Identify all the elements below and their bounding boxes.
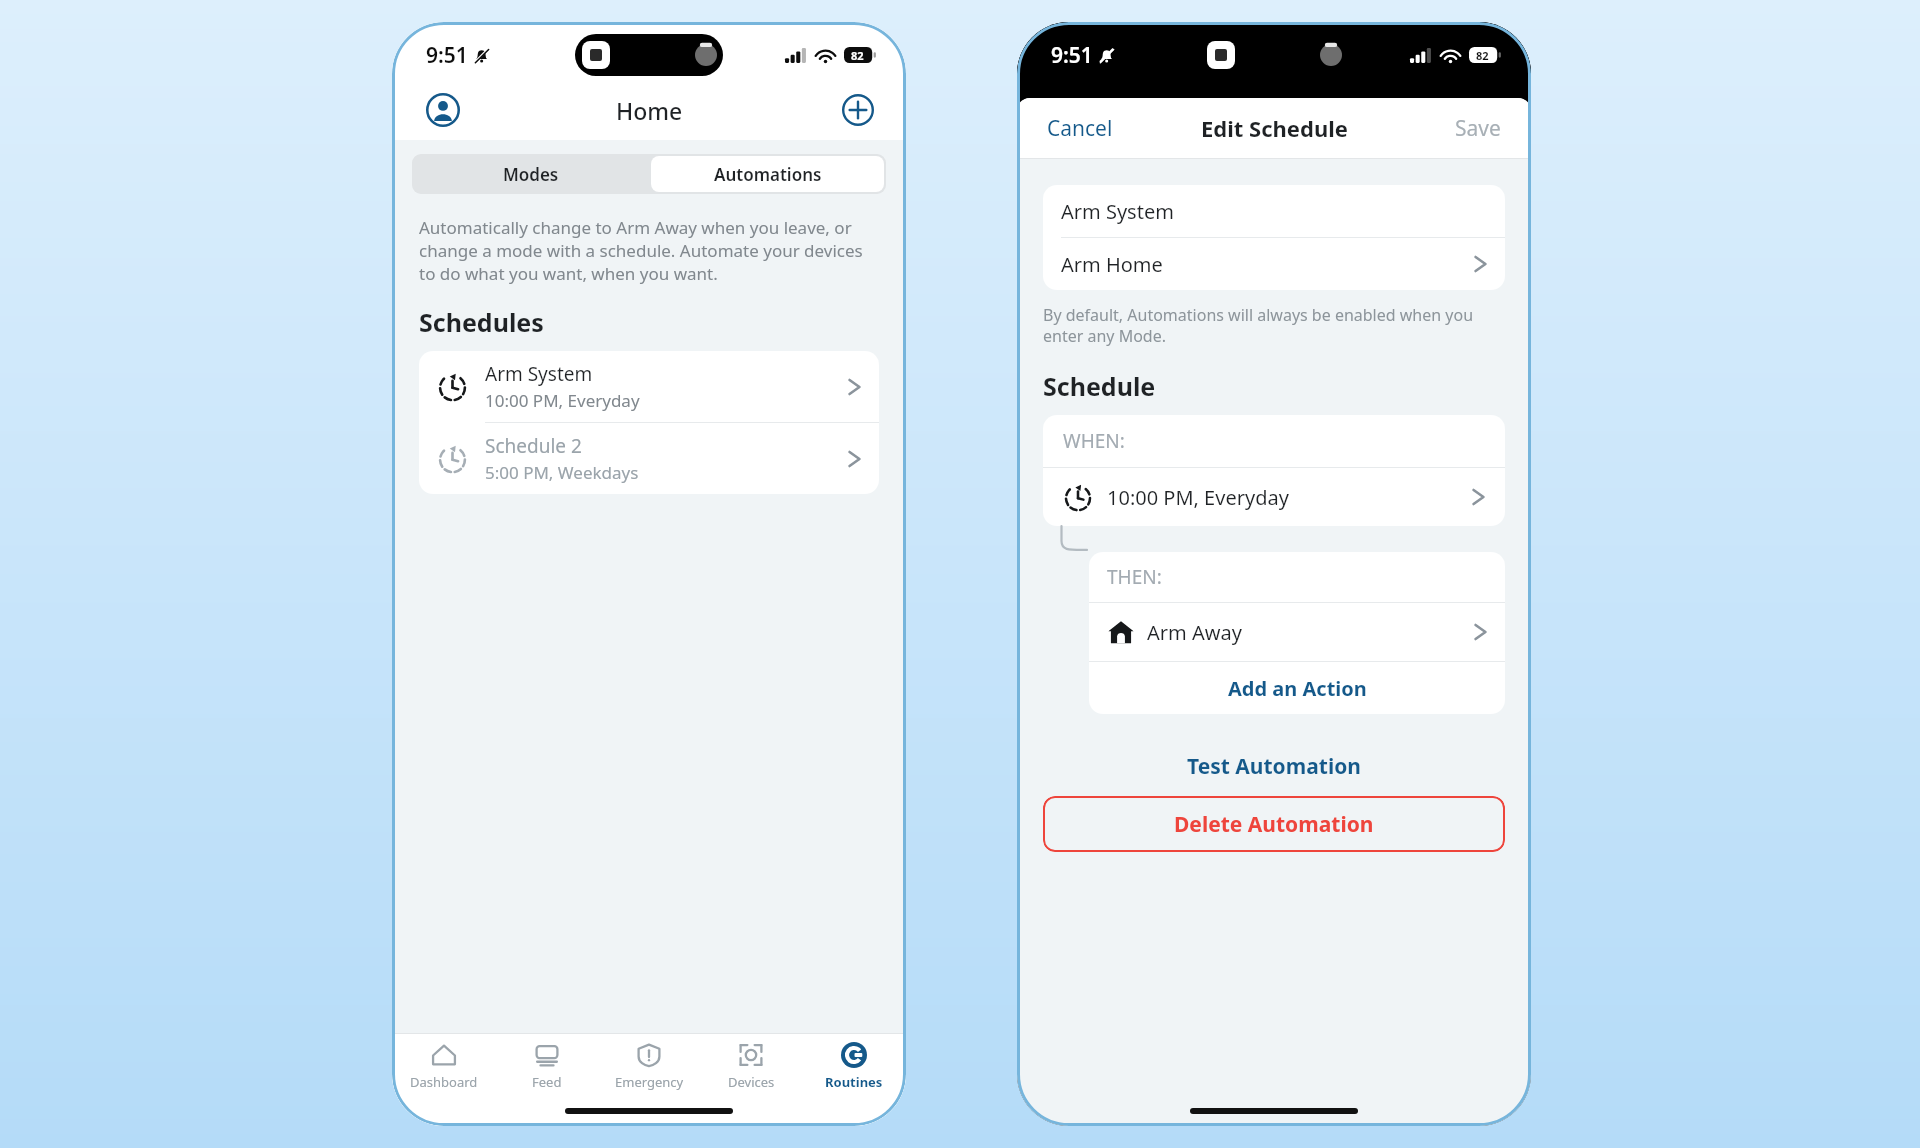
button[interactable]: Add an Action [1089, 662, 1505, 714]
button[interactable]: Feed [497, 1042, 597, 1091]
staticText: Add an Action [1228, 675, 1367, 702]
staticText: Arm Home [1061, 251, 1474, 278]
staticText: 9:51 [1051, 41, 1093, 70]
button[interactable]: Emergency [599, 1042, 699, 1091]
staticText: Arm Away [1147, 619, 1474, 646]
button[interactable]: Add [842, 94, 874, 126]
staticText: Schedule 2 [485, 433, 582, 459]
staticText: Emergency [615, 1073, 684, 1091]
staticText: Routines [825, 1073, 883, 1091]
button[interactable]: Account [426, 93, 460, 127]
staticText: Schedules [419, 305, 544, 339]
button[interactable]: Arm System [419, 351, 879, 422]
button[interactable]: Routines [804, 1042, 904, 1091]
staticText: Save [1455, 114, 1501, 143]
staticText: Devices [728, 1073, 775, 1091]
staticText: Schedule [1043, 369, 1156, 403]
button[interactable]: Devices [701, 1042, 801, 1091]
staticText: Home [616, 95, 683, 126]
staticText: 82 [851, 48, 864, 63]
staticText: Modes [503, 163, 559, 186]
staticText: THEN: [1107, 564, 1162, 590]
staticText: Automatically change to Arm Away when yo… [419, 216, 879, 285]
staticText: WHEN: [1063, 428, 1125, 454]
button[interactable]: Cancel [1043, 110, 1117, 147]
staticText: By default, Automations will always be e… [1043, 304, 1505, 347]
button[interactable]: Dashboard [394, 1042, 494, 1091]
staticText: Test Automation [1187, 752, 1361, 781]
button[interactable]: Test Automation [1017, 744, 1531, 788]
button[interactable]: Delete Automation [1043, 796, 1505, 852]
staticText: 9:51 [426, 41, 468, 70]
staticText: Cancel [1047, 114, 1113, 143]
staticText: 82 [1476, 48, 1489, 63]
staticText: Arm System [485, 361, 593, 387]
staticText: Delete Automation [1174, 810, 1374, 839]
button[interactable]: Schedule 2 [419, 423, 879, 494]
button[interactable]: Arm Away [1089, 603, 1505, 661]
staticText: Feed [532, 1073, 562, 1091]
staticText: Automations [714, 163, 822, 186]
button[interactable]: Automations [651, 156, 884, 192]
staticText: Dashboard [410, 1073, 478, 1091]
button[interactable]: Save [1451, 110, 1505, 147]
staticText: 10:00 PM, Everyday [485, 389, 640, 412]
button[interactable]: Modes [412, 154, 649, 194]
button[interactable]: Arm Home [1043, 238, 1505, 290]
staticText: Arm System [1061, 198, 1174, 225]
staticText: Edit Schedule [1201, 113, 1348, 143]
button[interactable]: 10:00 PM, Everyday [1043, 468, 1505, 526]
staticText: 10:00 PM, Everyday [1107, 484, 1472, 511]
staticText: 5:00 PM, Weekdays [485, 461, 639, 484]
button[interactable]: Arm System [1043, 185, 1505, 237]
